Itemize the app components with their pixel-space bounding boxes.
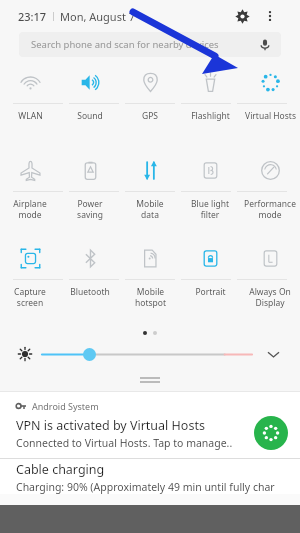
staticText: Capture screen [14,286,46,308]
staticText: GPS [142,110,158,122]
button[interactable]: Sound [60,61,120,103]
staticText: Connected to Virtual Hosts. Tap to manag… [16,436,233,450]
button[interactable]: Portrait [180,237,240,279]
button[interactable]: Settings [230,4,254,28]
staticText: Android System [32,400,99,412]
button[interactable]: Virtual Hosts [240,61,300,103]
staticText: VPN is activated by Virtual Hosts [16,417,205,434]
button[interactable]: Airplane mode [0,149,60,191]
staticText: Blue light filter [191,198,229,220]
button[interactable]: Performance mode [240,149,300,191]
staticText: Virtual Hosts [245,110,296,122]
button[interactable]: More options [258,4,282,28]
staticText: Mon, August 7 [60,9,136,24]
button[interactable]: Mobile hotspot [120,237,180,279]
staticText: Airplane mode [13,198,47,220]
button[interactable] [42,347,252,361]
staticText: Always On Display [249,286,291,308]
button[interactable]: Search phone and scan for nearby devices [19,32,281,57]
button[interactable]: Bluetooth [60,237,120,279]
button[interactable]: Always On Display [240,237,300,279]
button[interactable]: Mobile data [120,149,180,191]
button[interactable]: Capture screen [0,237,60,279]
staticText: Power saving [77,198,103,220]
button[interactable]: GPS [120,61,180,103]
staticText: Mobile data [136,198,164,220]
staticText: Performance mode [244,198,296,220]
button[interactable]: Cable charging [0,459,300,494]
button[interactable]: Blue light filter [180,149,240,191]
staticText: Search phone and scan for nearby devices [31,38,219,51]
staticText: Mobile hotspot [135,286,166,308]
staticText: Bluetooth [70,286,110,298]
button[interactable]: Power saving [60,149,120,191]
staticText: Cable charging [16,461,105,478]
staticText: Charging: 90% (Approximately 49 min unti… [16,480,275,494]
button[interactable]: WLAN [0,61,60,103]
staticText: Portrait [195,286,226,298]
staticText: Flashlight [191,110,230,122]
button[interactable]: Android System [0,392,300,458]
button[interactable]: Expand [264,345,282,363]
staticText: Sound [77,110,103,122]
staticText: 23:17 [18,9,47,24]
staticText: WLAN [18,110,43,122]
button[interactable]: Flashlight [180,61,240,103]
